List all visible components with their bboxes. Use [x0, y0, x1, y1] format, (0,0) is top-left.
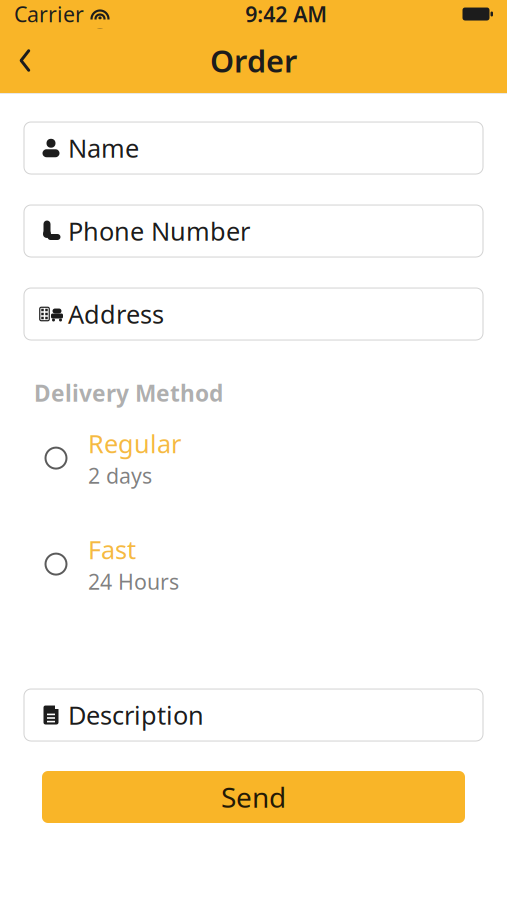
- staticText: 9:42 AM: [245, 0, 327, 28]
- button[interactable]: Address: [24, 288, 483, 340]
- button[interactable]: Name: [24, 122, 483, 174]
- staticText: Regular: [88, 427, 181, 460]
- staticText: Send: [221, 778, 286, 816]
- staticText: Description: [68, 698, 204, 732]
- staticText: Phone Number: [68, 214, 250, 248]
- staticText: Name: [68, 131, 139, 165]
- staticText: Order: [210, 40, 297, 81]
- button[interactable]: Fast: [24, 536, 483, 592]
- staticText: Fast: [88, 533, 136, 566]
- button[interactable]: Phone Number: [24, 205, 483, 257]
- staticText: 2 days: [88, 461, 152, 490]
- staticText: Address: [68, 297, 164, 331]
- button[interactable]: Back: [0, 36, 50, 84]
- button[interactable]: Regular: [24, 430, 483, 486]
- button[interactable]: Description: [24, 689, 483, 741]
- staticText: 24 Hours: [88, 567, 179, 596]
- staticText: Delivery Method: [34, 378, 223, 408]
- staticText: Carrier: [14, 0, 84, 28]
- button[interactable]: Send: [42, 771, 465, 823]
